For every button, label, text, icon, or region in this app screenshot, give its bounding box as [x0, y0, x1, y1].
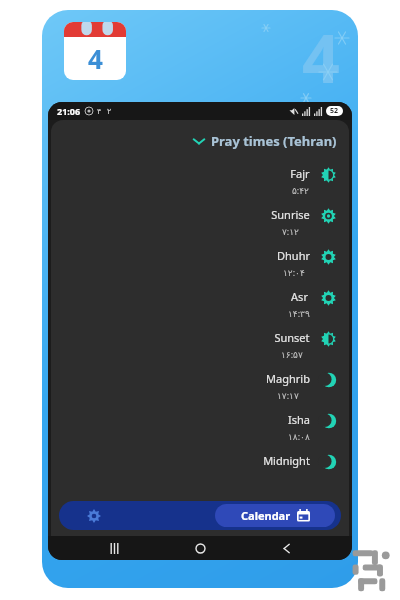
staticText: 4	[88, 41, 103, 76]
staticText: Sunset	[274, 330, 310, 345]
button[interactable]: Dhuhr	[51, 246, 349, 280]
button[interactable]: Sunset	[51, 328, 349, 362]
staticText: Isha	[288, 412, 310, 427]
staticText: ۴	[97, 107, 102, 116]
button[interactable]: Back	[266, 536, 306, 560]
staticText: ۱۴:۳۹	[288, 307, 310, 319]
staticText: ۱۲:۰۴	[283, 266, 305, 278]
staticText: ۵:۴۲	[292, 184, 309, 196]
staticText: ۱۶:۵۷	[281, 348, 303, 360]
button[interactable]: Maghrib	[51, 369, 349, 403]
staticText: 21:06	[57, 105, 81, 117]
staticText: ۷:۱۲	[282, 225, 299, 237]
button[interactable]: Pray times (Tehran)	[51, 126, 349, 156]
button[interactable]: Home	[180, 536, 220, 560]
staticText: Dhuhr	[277, 248, 310, 263]
button[interactable]: Asr	[51, 287, 349, 321]
staticText: Midnight	[263, 453, 310, 468]
staticText: ۱۷:۱۷	[277, 389, 299, 401]
staticText: ۱۸:۰۸	[288, 430, 310, 442]
button[interactable]: Isha	[51, 410, 349, 444]
staticText: Calendar	[241, 508, 291, 523]
staticText: Sunrise	[271, 207, 310, 222]
button[interactable]: Midnight	[51, 451, 349, 472]
staticText: ۲	[107, 107, 112, 116]
button[interactable]: Calendar	[215, 504, 335, 527]
button[interactable]: Settings	[81, 503, 107, 529]
button[interactable]: Sunrise	[51, 205, 349, 239]
staticText: Pray times (Tehran)	[211, 132, 337, 150]
button[interactable]: Recent apps	[94, 536, 134, 560]
staticText: 52	[330, 106, 339, 116]
staticText: Maghrib	[266, 371, 310, 386]
button[interactable]: Fajr	[51, 164, 349, 198]
staticText: 4	[302, 12, 340, 102]
staticText: Fajr	[290, 166, 310, 181]
staticText: Asr	[291, 289, 308, 304]
